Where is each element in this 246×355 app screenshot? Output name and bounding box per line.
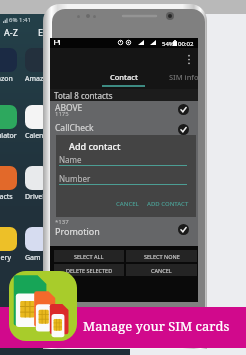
button[interactable]: ADD CONTACT — [145, 198, 191, 210]
staticText: 54% — [162, 40, 174, 48]
staticText: DriveM — [25, 192, 49, 202]
staticText: CANCEL — [116, 200, 139, 208]
staticText: *137 — [55, 218, 69, 226]
staticText: ADD CONTACT — [147, 200, 189, 208]
staticText: Manage your SIM cards — [83, 317, 230, 335]
staticText: llery — [0, 253, 12, 263]
staticText: 1175 — [55, 110, 69, 118]
staticText: 6% 1:41 — [9, 16, 31, 24]
button[interactable]: DELETE SELECTED — [54, 264, 124, 276]
button[interactable]: *137 — [50, 216, 198, 241]
staticText: Calen — [25, 131, 44, 141]
button[interactable]: Contact — [101, 70, 147, 90]
staticText: Amaz — [25, 74, 44, 84]
button[interactable]: SELECT NONE — [126, 250, 197, 262]
staticText: ulator — [0, 131, 17, 141]
staticText: 00:02 — [178, 40, 194, 48]
staticText: EDI — [38, 26, 53, 38]
staticText: SELECT NONE — [144, 253, 180, 260]
staticText: Contact — [110, 72, 138, 82]
staticText: azon — [0, 74, 13, 84]
staticText: Name — [59, 154, 82, 165]
staticText: Promotion — [55, 225, 100, 237]
staticText: tacts — [0, 192, 13, 202]
staticText: SELECT ALL — [74, 253, 104, 260]
button[interactable]: CANCEL — [114, 198, 141, 210]
staticText: Add contact — [69, 140, 121, 152]
staticText: CANCEL — [151, 267, 172, 274]
staticText: Number — [59, 173, 91, 184]
staticText: SIM info — [169, 72, 199, 82]
staticText: Gam — [25, 253, 41, 263]
staticText: CallCheck — [55, 122, 94, 134]
button[interactable]: SELECT ALL — [54, 250, 124, 262]
button[interactable]: SIM info — [161, 70, 207, 90]
staticText: DELETE SELECTED — [66, 267, 113, 274]
button[interactable]: CANCEL — [126, 264, 197, 276]
staticText: Total 8 contacts — [54, 90, 113, 101]
staticText: A-Z — [4, 26, 18, 38]
button[interactable]: More options — [182, 48, 196, 70]
button[interactable]: CallCheck — [50, 120, 198, 140]
staticText: ABOVE — [55, 102, 83, 114]
